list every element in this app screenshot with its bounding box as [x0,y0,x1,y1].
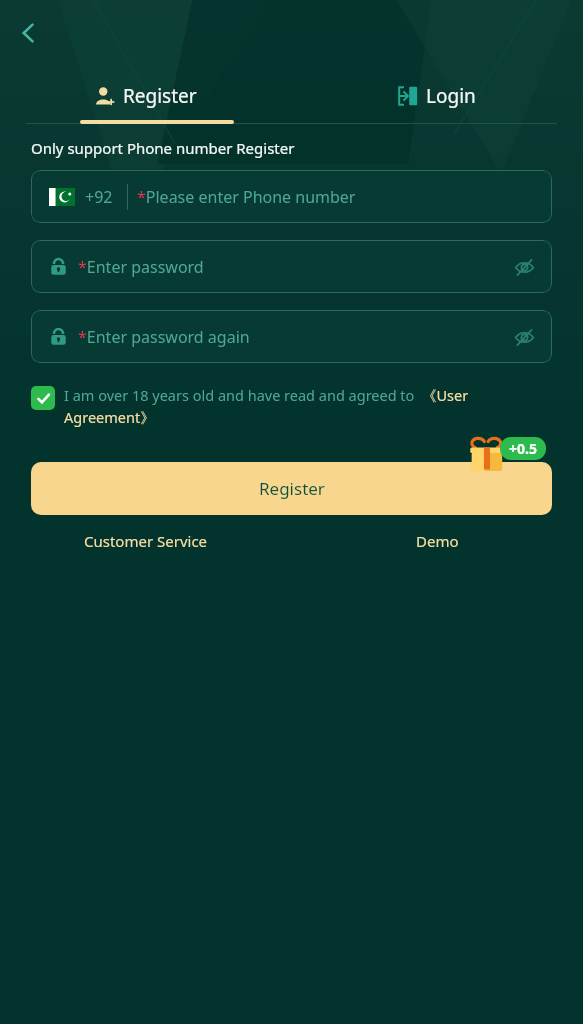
button[interactable]: *Enter password [31,240,552,293]
button[interactable]: Register [0,72,291,120]
staticText: Login [426,83,476,109]
staticText: Demo [416,531,459,551]
staticText: +92 [85,186,113,208]
staticText: I am over 18 years old and have read and… [64,385,557,428]
button[interactable]: Login [291,72,583,120]
staticText: Customer Service [84,531,208,551]
other: Gift bonus [468,436,506,474]
button[interactable]: Back [6,10,52,56]
staticText: +0.5 [509,439,537,458]
staticText: *Please enter Phone number [137,186,356,208]
staticText: Register [123,83,197,109]
button[interactable]: *Enter password again [31,310,552,363]
button[interactable]: Show password [504,317,544,357]
button[interactable]: Register [31,462,552,515]
button[interactable]: Customer Service [0,531,291,551]
staticText: Register [259,477,325,500]
button[interactable]: Show password [504,247,544,287]
button[interactable]: +92 [31,170,552,223]
staticText: *Enter password again [78,326,250,348]
button[interactable]: Demo [291,531,583,551]
staticText: *Enter password [78,256,204,278]
staticText: Only support Phone number Register [31,138,295,158]
button[interactable]: I am over 18 years old and have read and… [31,385,557,428]
